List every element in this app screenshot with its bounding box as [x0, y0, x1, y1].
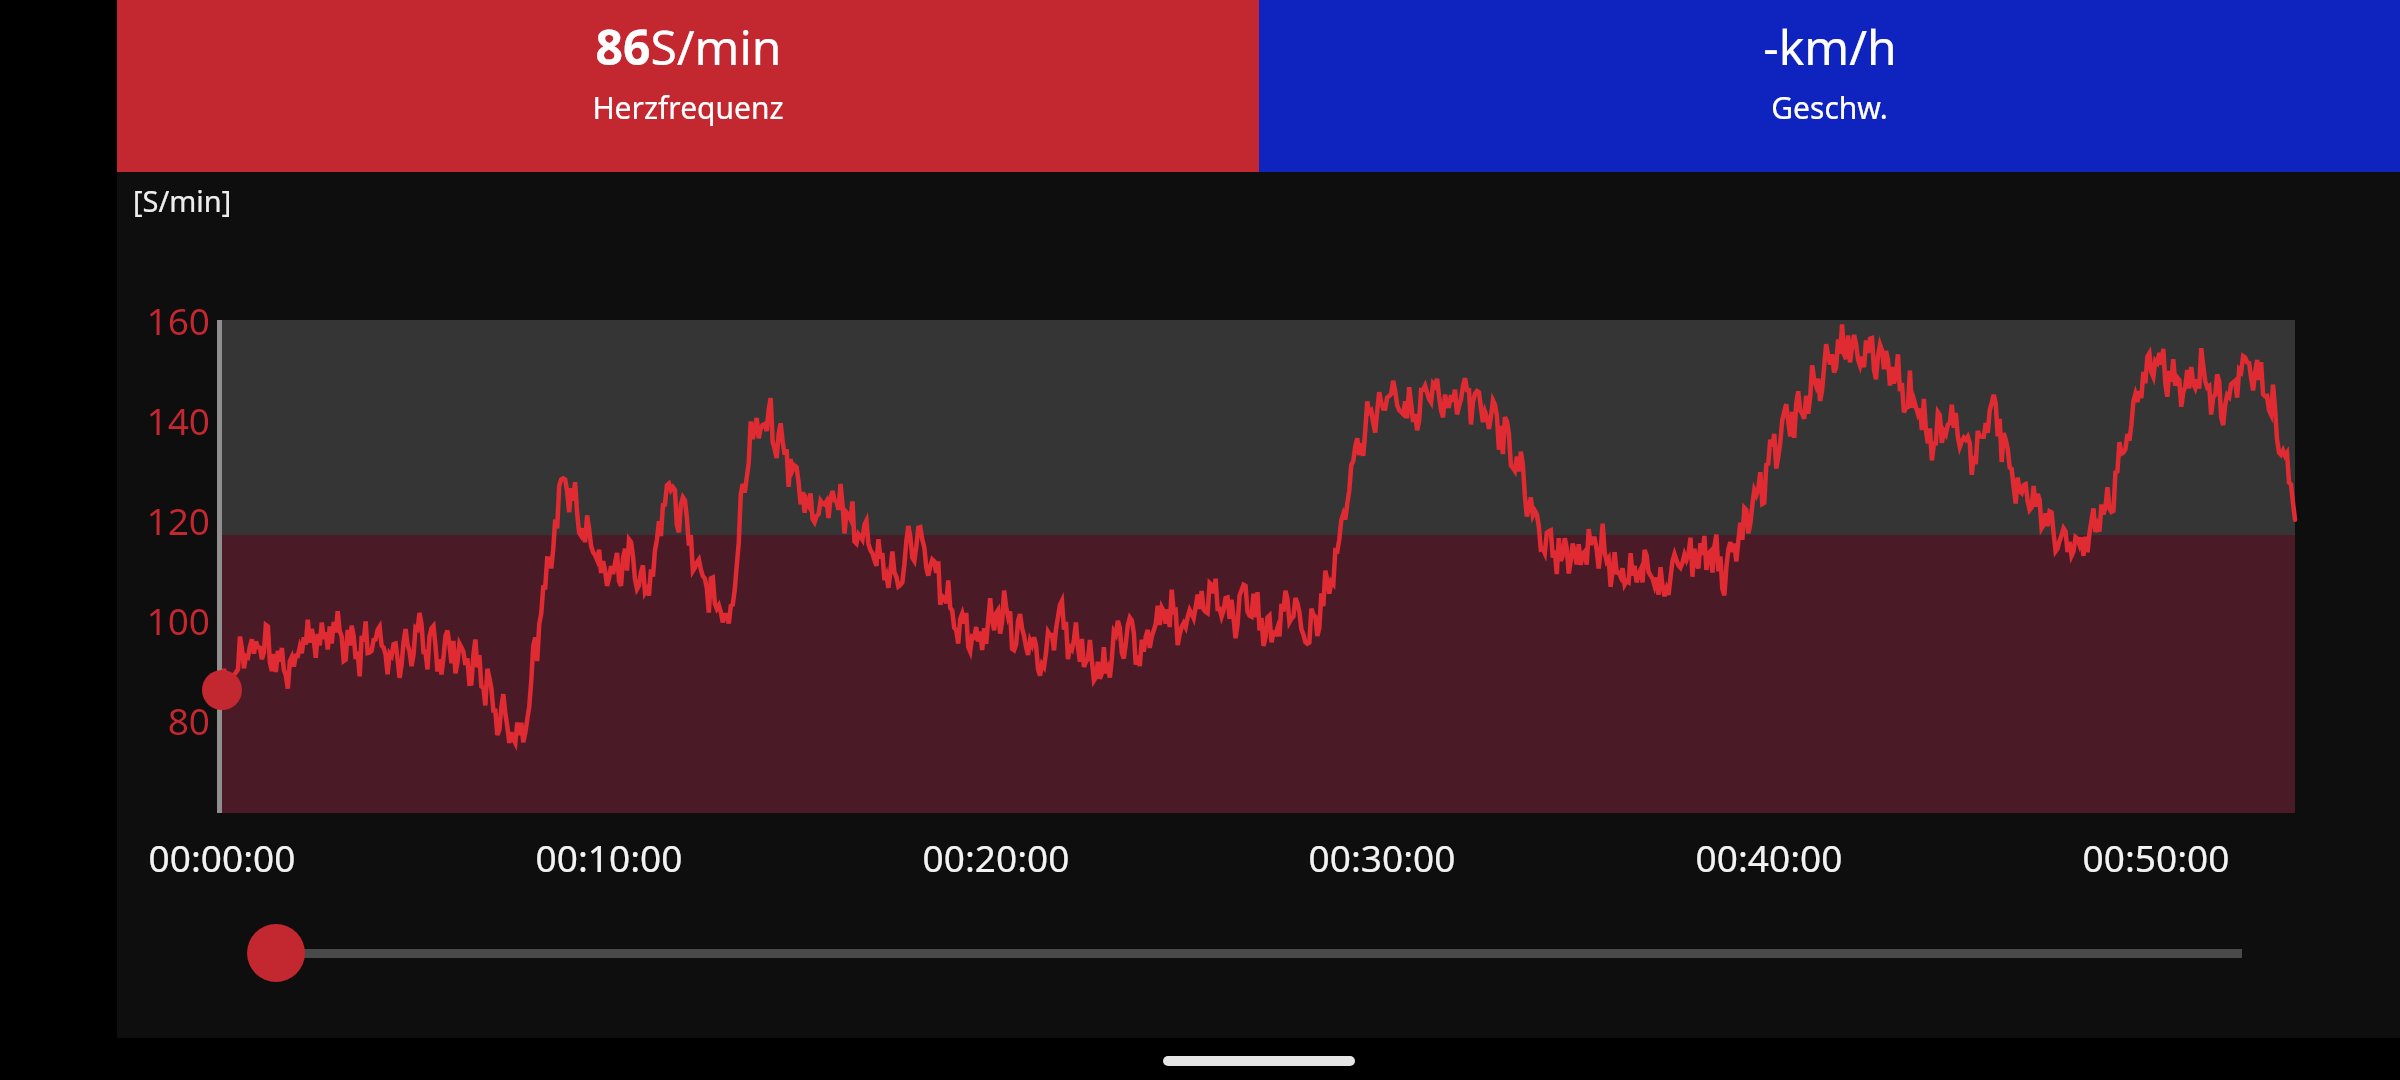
staticText: Herzfrequenz [592, 87, 784, 128]
staticText: 00:20:00 [866, 832, 1126, 882]
staticText: 86S/min [595, 14, 782, 79]
staticText: 00:00:00 [92, 832, 352, 882]
button[interactable]: 86S/min [117, 0, 1259, 172]
staticText: 00:40:00 [1639, 832, 1899, 882]
staticText: 80 [130, 695, 210, 745]
staticText: -km/h [1763, 14, 1897, 79]
button[interactable]: Position scrubber [200, 905, 2280, 1001]
staticText: 140 [130, 395, 210, 445]
staticText: 00:10:00 [479, 832, 739, 882]
button[interactable]: Heart rate chart [222, 320, 2295, 813]
staticText: 00:50:00 [2026, 832, 2286, 882]
staticText: [S/min] [133, 181, 232, 220]
staticText: 120 [130, 495, 210, 545]
staticText: 100 [130, 595, 210, 645]
staticText: 00:30:00 [1252, 832, 1512, 882]
staticText: Geschw. [1771, 87, 1888, 128]
button[interactable]: -km/h [1259, 0, 2400, 172]
staticText: 160 [130, 295, 210, 345]
